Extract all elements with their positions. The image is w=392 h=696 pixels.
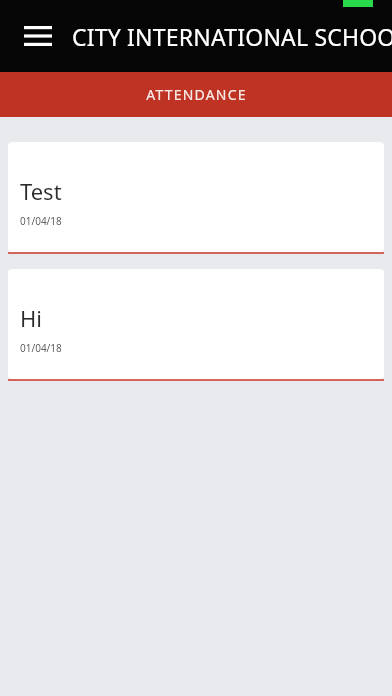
staticText: 01/04/18 — [20, 341, 62, 355]
button[interactable]: Test — [8, 142, 384, 254]
staticText: Test — [20, 176, 62, 206]
staticText: ATTENDANCE — [146, 85, 247, 104]
staticText: CITY INTERNATIONAL SCHOOL — [72, 21, 392, 52]
staticText: Hi — [20, 303, 42, 333]
button[interactable]: Open navigation menu — [14, 12, 62, 60]
button[interactable]: Hi — [8, 269, 384, 381]
staticText: 01/04/18 — [20, 214, 62, 228]
